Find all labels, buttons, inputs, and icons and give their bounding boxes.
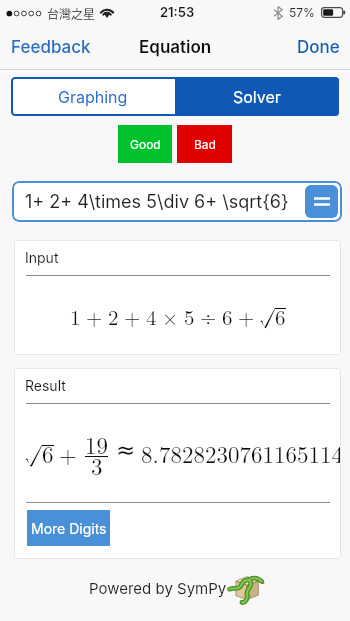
staticText: Graphing	[58, 87, 128, 106]
staticText: Equation	[139, 37, 212, 58]
staticText: +	[86, 301, 103, 331]
button[interactable]: Good	[118, 125, 172, 163]
staticText: +	[59, 437, 77, 470]
staticText: Good	[130, 137, 161, 152]
button[interactable]: Feedback	[0, 28, 102, 67]
staticText: +	[124, 301, 141, 331]
staticText: 2	[108, 301, 119, 331]
staticText: Bad	[194, 137, 216, 152]
staticText: 6	[42, 437, 54, 470]
staticText: ×	[162, 301, 179, 331]
staticText: 21:53	[160, 4, 195, 20]
staticText: 3	[91, 449, 103, 482]
staticText: 19	[85, 428, 108, 461]
button[interactable]: More Digits	[27, 510, 110, 546]
staticText: 6	[275, 301, 286, 331]
staticText: Feedback	[11, 37, 91, 58]
staticText: 4	[146, 301, 157, 331]
staticText: ÷	[200, 301, 217, 331]
staticText: 1	[70, 301, 81, 331]
staticText: Solver	[233, 87, 281, 106]
staticText: More Digits	[31, 520, 107, 537]
staticText: 8.7828230761165114	[141, 437, 341, 470]
staticText: +	[238, 301, 255, 331]
staticText: Input	[25, 249, 59, 266]
button[interactable]: Bad	[177, 125, 232, 163]
staticText: 6	[222, 301, 233, 331]
staticText: 1+ 2+ 4\times 5\div 6+ \sqrt{6}	[25, 191, 305, 213]
staticText: Done	[297, 37, 340, 58]
button[interactable]: Solver	[175, 77, 339, 116]
button[interactable]: Graphing	[11, 77, 175, 116]
staticText: ≈	[116, 437, 136, 464]
staticText: Result	[25, 377, 66, 394]
staticText: 台灣之星	[47, 5, 96, 22]
staticText: Powered by SymPy	[89, 579, 227, 597]
staticText: 57%	[289, 5, 315, 20]
staticText: 5	[184, 301, 195, 331]
button[interactable]: Done	[287, 28, 350, 67]
button[interactable]: Evaluate	[305, 185, 338, 218]
